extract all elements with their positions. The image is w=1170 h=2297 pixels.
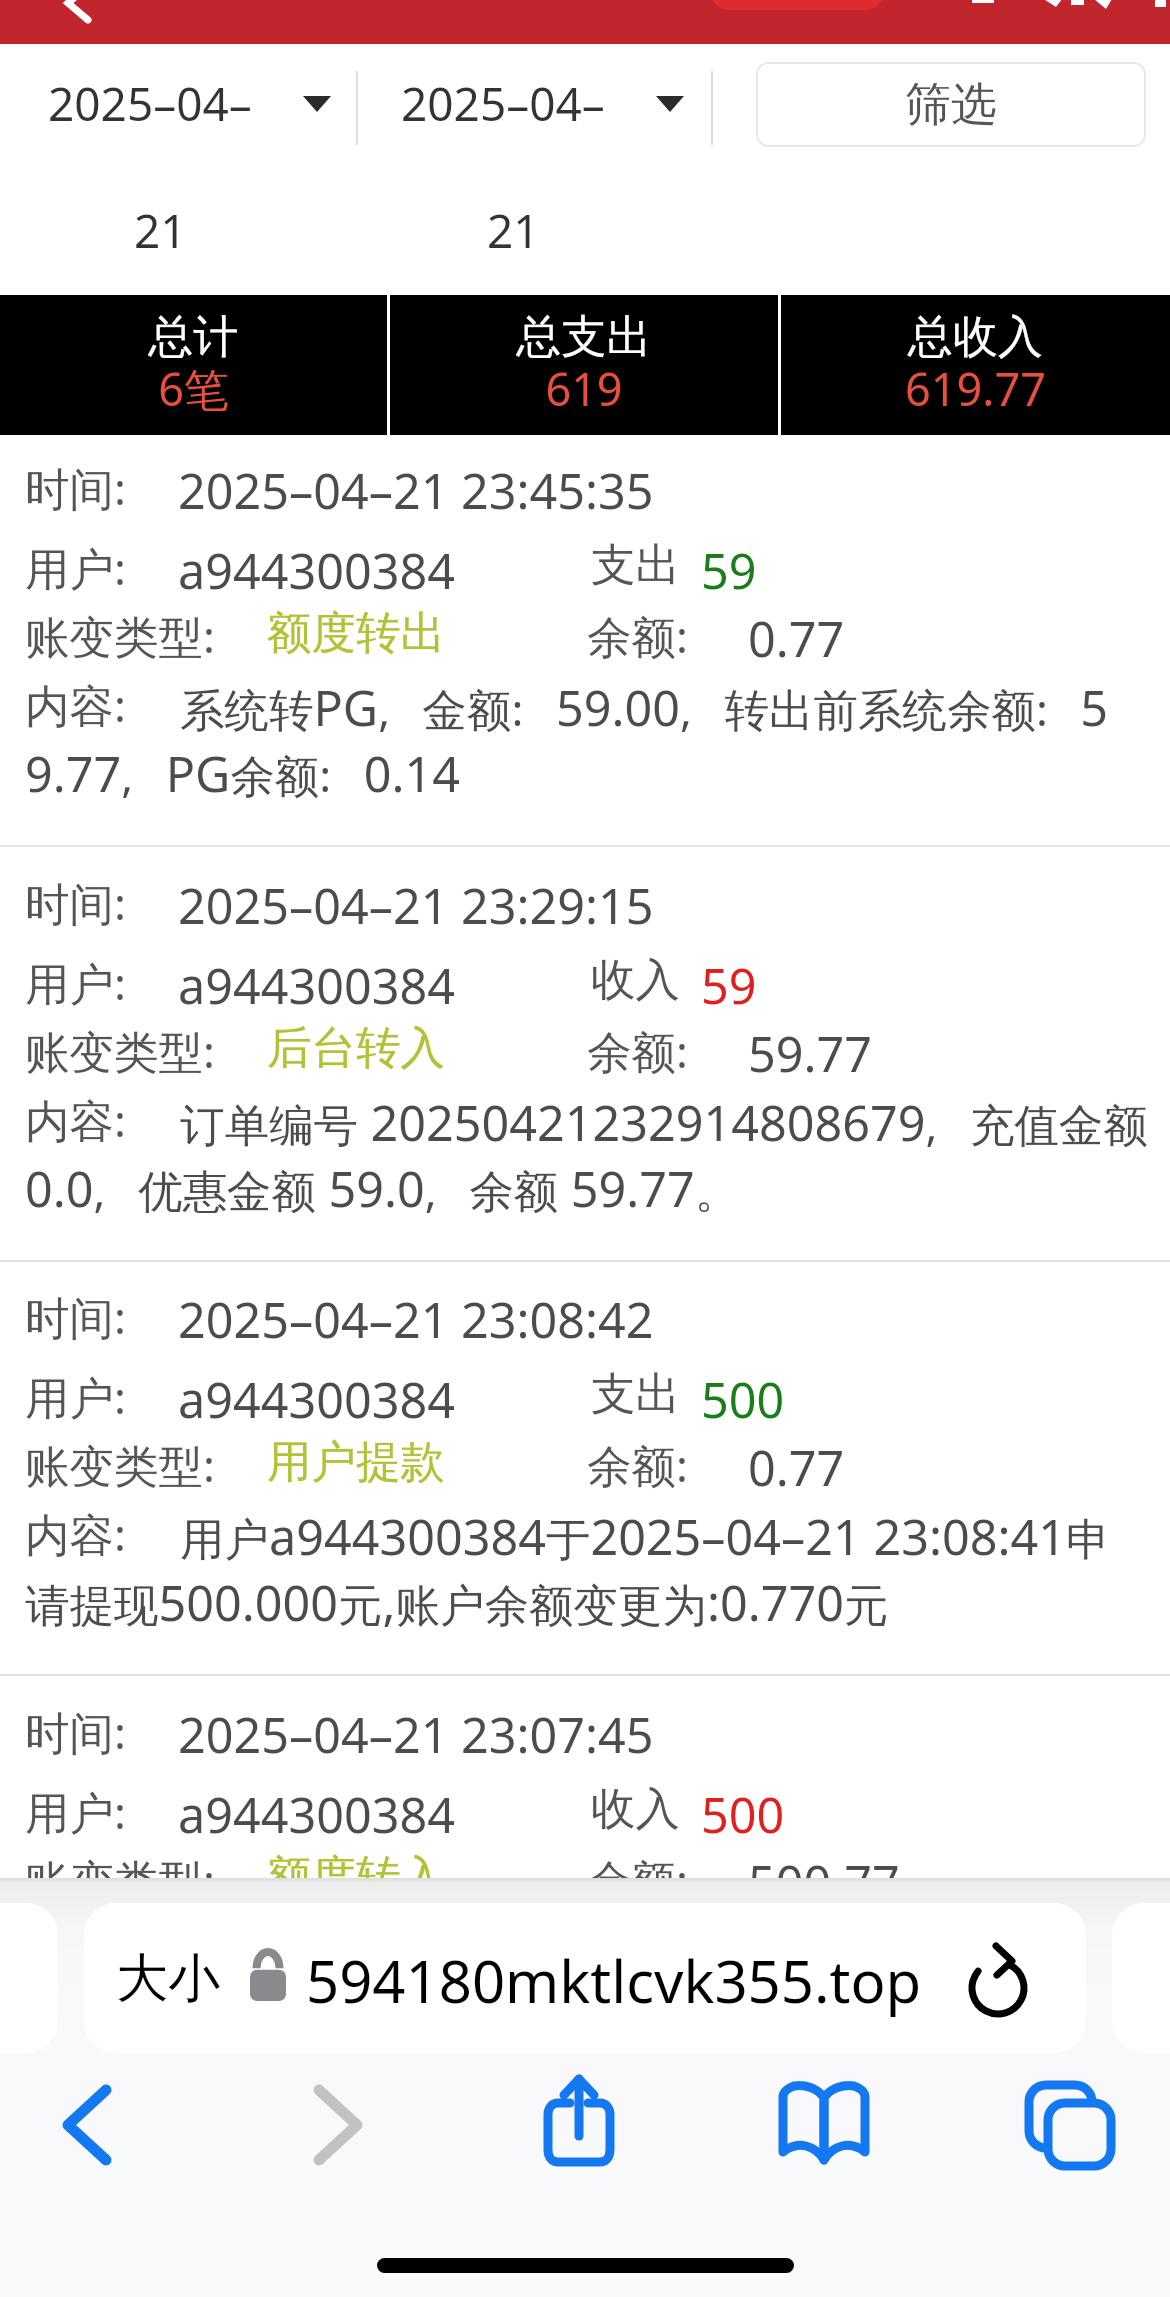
staticText: 内容: xyxy=(25,1089,159,1150)
staticText: 2025–04–21 23:45:35 xyxy=(178,457,654,523)
staticText: 大小 xyxy=(116,1946,220,2012)
staticText: 594180mktlcvk355.top xyxy=(306,1941,922,2020)
staticText: 9.77,PG余额:0.14 xyxy=(25,740,460,806)
staticText: a944300384 xyxy=(178,952,455,1018)
staticText: a944300384 xyxy=(178,1781,455,1847)
staticText: 2025–04–21 23:07:45 xyxy=(178,1701,654,1767)
staticText: 2025–04– xyxy=(401,72,605,135)
staticText: 21 xyxy=(487,199,540,262)
button[interactable]: 时间: xyxy=(0,872,1170,1286)
staticText: 账变类型: xyxy=(25,1020,248,1081)
staticText: 59 xyxy=(701,952,757,1018)
button[interactable]: Forward xyxy=(287,2073,391,2177)
staticText: 用户a944300384于2025–04–21 23:08:41申 xyxy=(180,1503,1111,1569)
button[interactable]: 时间: xyxy=(0,457,1170,871)
staticText: 总计 xyxy=(0,309,387,366)
staticText: 后台转入 xyxy=(267,1020,445,1076)
staticText: 系统转PG,金额:59.00,转出前系统余额:5 xyxy=(180,674,1109,740)
staticText: 用户提款 xyxy=(267,1434,445,1490)
staticText: 余额: xyxy=(587,1020,721,1081)
staticText: 6笔 xyxy=(0,358,387,419)
staticText: 支出 xyxy=(591,537,680,593)
staticText: 用户: xyxy=(25,537,159,598)
staticText: 0.0,优惠金额 59.0,余额 59.77。 xyxy=(25,1155,740,1221)
staticText: 用户: xyxy=(25,1366,159,1427)
staticText: 500.77 xyxy=(748,1849,900,1915)
staticText: 总支出 xyxy=(390,309,778,366)
staticText: 收入 xyxy=(591,952,680,1008)
staticText: 用户: xyxy=(25,952,159,1013)
staticText: 账变类型: xyxy=(25,1434,248,1495)
staticText: 请提现500.000元,账户余额变更为:0.770元 xyxy=(25,1569,889,1635)
staticText: 内容: xyxy=(25,1503,159,1564)
staticText: 用户: xyxy=(25,1781,159,1842)
staticText: 2025–04–21 23:29:15 xyxy=(178,872,654,938)
button[interactable]: 时间: xyxy=(0,1701,1170,2115)
staticText: 筛选 xyxy=(905,76,997,134)
button[interactable]: 2025–04– xyxy=(383,60,693,150)
button[interactable]: 总收入 xyxy=(781,295,1170,435)
staticText: a944300384 xyxy=(178,1366,455,1432)
button[interactable]: 总计 xyxy=(0,295,387,435)
staticText: 2025–04–21 23:08:42 xyxy=(178,1286,654,1352)
staticText: 0.77 xyxy=(748,1434,845,1500)
staticText: 余额: xyxy=(587,1849,721,1910)
staticText: 500 xyxy=(701,1781,785,1847)
staticText: 619.77 xyxy=(781,358,1170,419)
staticText: 500 xyxy=(701,1366,785,1432)
button[interactable]: App header xyxy=(0,0,1170,44)
button[interactable]: Bookmarks xyxy=(778,2084,870,2162)
staticText: 额度转出 xyxy=(267,605,445,661)
button[interactable]: Share xyxy=(543,2070,615,2162)
staticText: 21 xyxy=(134,199,187,262)
button[interactable]: 大小 xyxy=(84,1903,1086,2053)
staticText: 619 xyxy=(390,358,778,419)
staticText: 0.77 xyxy=(748,605,845,671)
button[interactable]: 筛选 xyxy=(756,62,1146,147)
staticText: 支出 xyxy=(591,1366,680,1422)
staticText: 时间: xyxy=(25,1286,159,1347)
staticText: 时间: xyxy=(25,457,159,518)
staticText: 内容: xyxy=(25,674,159,735)
staticText: 订单编号 20250421232914808679,充值金额 xyxy=(180,1089,1148,1155)
staticText: 收入 xyxy=(591,1781,680,1837)
staticText: 时间: xyxy=(25,1701,159,1762)
button[interactable]: 总支出 xyxy=(390,295,778,435)
staticText: 59.77 xyxy=(748,1020,872,1086)
staticText: 余额: xyxy=(587,605,721,666)
staticText: a944300384 xyxy=(178,537,455,603)
button[interactable]: 2025–04– xyxy=(30,60,340,150)
button[interactable]: 时间: xyxy=(0,1286,1170,1700)
button[interactable]: Back xyxy=(34,2073,138,2177)
staticText: 额度转入 xyxy=(267,1849,445,1905)
button[interactable]: Tabs xyxy=(1025,2082,1107,2163)
staticText: 账变类型: xyxy=(25,605,248,666)
staticText: 余额: xyxy=(587,1434,721,1495)
staticText: 59 xyxy=(701,537,757,603)
button[interactable]: Reload xyxy=(954,1927,1046,2029)
staticText: 总收入 xyxy=(781,309,1170,366)
staticText: 时间: xyxy=(25,872,159,933)
staticText: 账变类型: xyxy=(25,1849,248,1910)
staticText: 2025–04– xyxy=(48,72,252,135)
